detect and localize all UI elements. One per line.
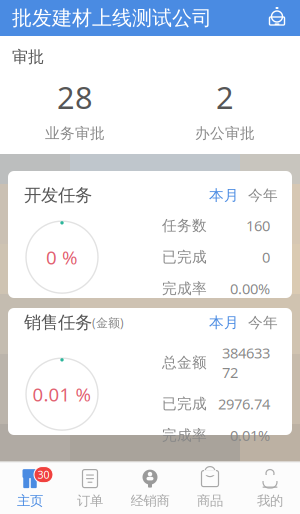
button[interactable]: 商品 (180, 468, 240, 509)
button[interactable]: 通知 (260, 1, 294, 35)
button[interactable]: 我的 (240, 468, 300, 509)
button[interactable]: 本月 (209, 313, 239, 331)
staticText: 经销商 (130, 493, 169, 509)
staticText: 商品 (197, 493, 223, 509)
staticText: 28 (57, 77, 93, 117)
staticText: 我的 (257, 493, 283, 509)
staticText: 业务审批 (45, 124, 105, 142)
staticText: 2976.74 (218, 394, 270, 414)
staticText: 0.01 % (32, 382, 91, 407)
button[interactable]: 经销商 (120, 468, 180, 509)
staticText: (金额) (92, 315, 124, 330)
staticText: 0 (262, 247, 270, 267)
staticText: 0 % (46, 245, 78, 270)
button[interactable]: 本月 (209, 186, 239, 204)
staticText: 已完成 (162, 248, 207, 266)
staticText: 批发建材上线测试公司 (12, 6, 212, 30)
staticText: 160 (246, 216, 270, 235)
staticText: 0.01% (230, 426, 270, 445)
staticText: 办公审批 (195, 124, 255, 142)
staticText: 今年 (248, 186, 278, 204)
staticText: 38463372 (222, 343, 270, 382)
staticText: 任务数 (162, 217, 207, 235)
staticText: 30 (37, 467, 49, 482)
button[interactable]: 订单 (60, 468, 120, 509)
staticText: 0.00% (230, 279, 270, 298)
staticText: 已完成 (162, 395, 207, 413)
button[interactable]: 今年 (248, 186, 278, 204)
staticText: 开发任务 (24, 185, 92, 206)
staticText: 审批 (12, 47, 44, 67)
staticText: 销售任务 (24, 312, 92, 333)
staticText: 本月 (209, 313, 239, 331)
button[interactable]: 今年 (248, 313, 278, 331)
staticText: 主页 (17, 493, 43, 509)
staticText: 总金额 (162, 354, 207, 372)
staticText: 完成率 (162, 426, 207, 444)
button[interactable]: 30 (0, 468, 60, 509)
staticText: 完成率 (162, 280, 207, 298)
staticText: 2 (216, 77, 234, 117)
staticText: 今年 (248, 313, 278, 331)
staticText: 订单 (77, 493, 103, 509)
staticText: 本月 (209, 186, 239, 204)
